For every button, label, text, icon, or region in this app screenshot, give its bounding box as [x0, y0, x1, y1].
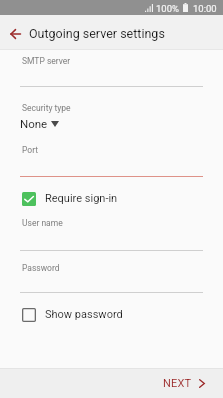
staticText: Show password	[45, 308, 123, 321]
staticText: Require sign-in	[45, 192, 118, 205]
staticText: Security type	[22, 103, 71, 113]
button[interactable]: Navigate up	[4, 22, 27, 45]
staticText: Outgoing server settings	[29, 26, 165, 41]
staticText: Port	[22, 145, 39, 155]
staticText: 10:00	[193, 3, 217, 14]
staticText: NEXT	[163, 377, 192, 390]
staticText: SMTP server	[22, 56, 71, 66]
button[interactable]: Require sign-in	[0, 187, 223, 210]
staticText: 100%	[156, 3, 179, 14]
button[interactable]: Show password	[0, 303, 223, 326]
staticText: Password	[22, 263, 60, 273]
staticText: None	[20, 117, 48, 130]
button[interactable]: NEXT	[147, 368, 223, 398]
button[interactable]: None	[20, 117, 59, 130]
staticText: User name	[22, 218, 63, 228]
